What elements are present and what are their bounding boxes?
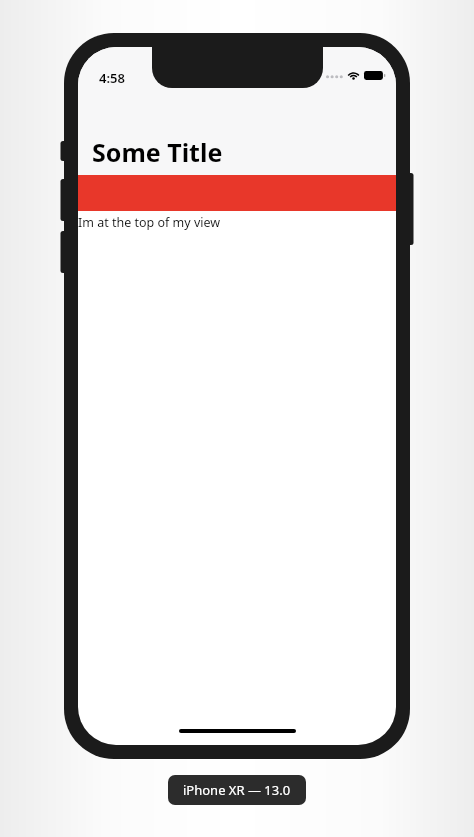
other: Wi-Fi — [347, 70, 360, 81]
staticText: 4:58 — [99, 69, 125, 87]
staticText: Im at the top of my view — [78, 214, 221, 231]
other: Battery — [364, 70, 386, 81]
other: Cellular signal — [326, 70, 343, 81]
staticText: Some Title — [92, 135, 223, 169]
staticText: iPhone XR — 13.0 — [183, 781, 291, 799]
button[interactable]: iPhone XR — 13.0 — [168, 775, 306, 805]
